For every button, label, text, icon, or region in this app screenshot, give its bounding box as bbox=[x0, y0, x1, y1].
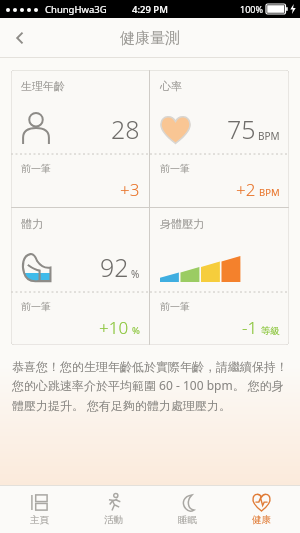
button[interactable]: 活動 bbox=[78, 486, 148, 533]
staticText: 身體壓力 bbox=[160, 217, 204, 231]
staticText: 前一筆 bbox=[160, 300, 190, 313]
staticText: 睡眠 bbox=[178, 514, 197, 526]
staticText: 100% bbox=[240, 3, 263, 15]
staticText: 健康量測 bbox=[120, 29, 180, 48]
staticText: 28 bbox=[111, 112, 140, 146]
staticText: 前一筆 bbox=[21, 300, 51, 313]
button[interactable]: 身體壓力 bbox=[150, 208, 289, 345]
staticText: 生理年齡 bbox=[21, 79, 65, 93]
staticText: 前一筆 bbox=[21, 162, 51, 175]
staticText: BPM bbox=[259, 186, 280, 199]
staticText: % bbox=[131, 267, 140, 281]
staticText: 恭喜您！您的生理年齡低於實際年齡，請繼續保持！您的心跳速率介於平均範圍 60 -… bbox=[12, 359, 288, 413]
button[interactable]: 心率 bbox=[150, 70, 289, 207]
staticText: % bbox=[132, 324, 140, 337]
staticText: 體力 bbox=[21, 217, 43, 231]
staticText: +3 bbox=[120, 178, 140, 201]
staticText: -1 bbox=[242, 316, 258, 339]
staticText: +10 bbox=[99, 316, 129, 339]
button[interactable]: 生理年齡 bbox=[11, 70, 149, 207]
staticText: 75 bbox=[227, 112, 256, 146]
staticText: +2 bbox=[236, 178, 256, 201]
staticText: 4:29 PM bbox=[132, 3, 168, 16]
button[interactable]: Back bbox=[0, 18, 40, 58]
button[interactable]: 主頁 bbox=[4, 486, 74, 533]
staticText: 前一筆 bbox=[160, 162, 190, 175]
staticText: 活動 bbox=[104, 514, 123, 526]
staticText: ChungHwa3G bbox=[45, 3, 107, 16]
staticText: 心率 bbox=[160, 79, 182, 93]
staticText: 等級 bbox=[261, 325, 280, 337]
staticText: 健康 bbox=[252, 514, 271, 526]
staticText: BPM bbox=[258, 129, 280, 143]
staticText: 92 bbox=[100, 250, 129, 284]
staticText: 主頁 bbox=[30, 514, 49, 526]
button[interactable]: 健康 bbox=[226, 486, 296, 533]
button[interactable]: 睡眠 bbox=[152, 486, 222, 533]
button[interactable]: 體力 bbox=[11, 208, 149, 345]
